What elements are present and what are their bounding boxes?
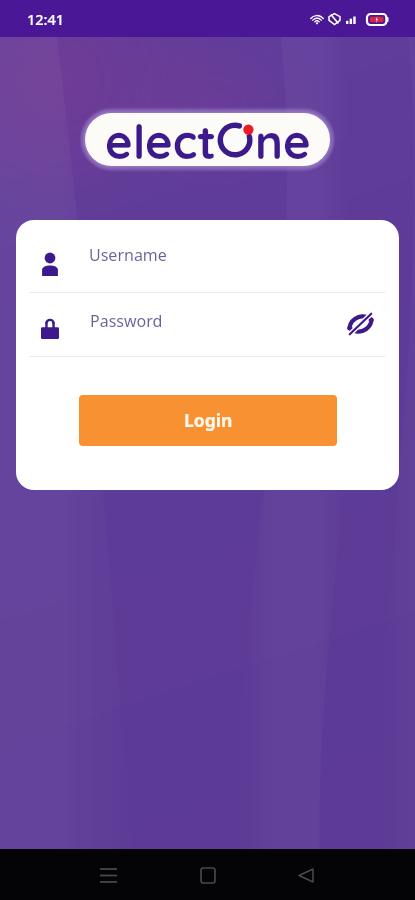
button[interactable]: Show password xyxy=(337,301,383,347)
staticText: ne xyxy=(255,113,311,165)
staticText: Login xyxy=(184,408,233,432)
button[interactable]: Login xyxy=(79,395,337,446)
staticText: elect xyxy=(105,113,217,165)
staticText: Username xyxy=(89,244,167,266)
button[interactable]: Back xyxy=(273,849,338,900)
button[interactable]: Username xyxy=(16,220,399,292)
button[interactable]: Home xyxy=(175,849,240,900)
staticText: Password xyxy=(90,310,163,332)
button[interactable]: Password xyxy=(16,293,399,356)
button[interactable]: Recents xyxy=(76,849,141,900)
staticText: 12:41 xyxy=(27,9,65,29)
